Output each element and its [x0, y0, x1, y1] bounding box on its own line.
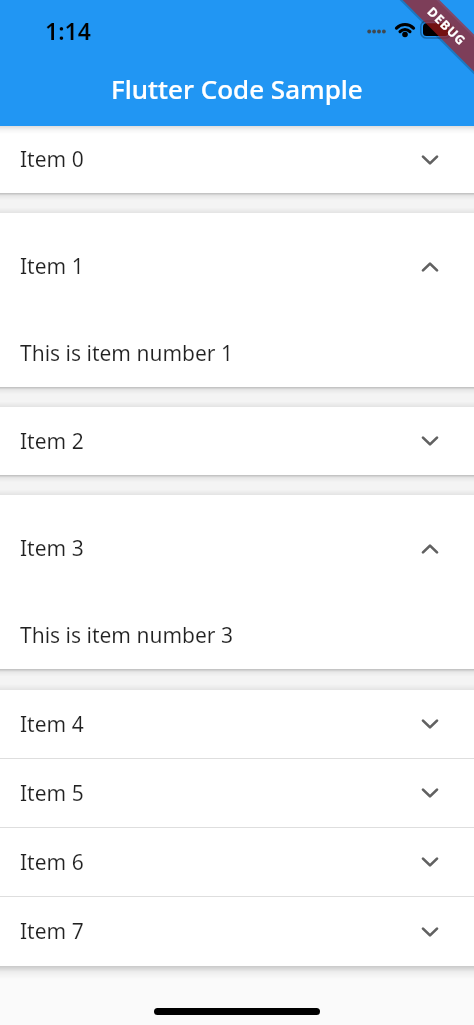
staticText: Flutter Code Sample	[111, 71, 363, 106]
staticText: Item 4	[20, 710, 84, 739]
staticText: Item 3	[20, 534, 84, 563]
button[interactable]: Item 2	[0, 407, 474, 475]
staticText: 1:14	[45, 15, 91, 46]
button[interactable]: This is item number 1	[0, 320, 474, 387]
staticText: Item 6	[20, 848, 84, 877]
staticText: Item 5	[20, 779, 84, 808]
button[interactable]: Item 4	[0, 690, 474, 758]
staticText: Item 7	[20, 917, 84, 946]
staticText: This is item number 3	[20, 621, 233, 650]
button[interactable]: Item 5	[0, 759, 474, 827]
button[interactable]: Item 0	[0, 126, 474, 193]
button[interactable]: Item 6	[0, 828, 474, 896]
button[interactable]: Item 7	[0, 897, 474, 966]
staticText: This is item number 1	[20, 339, 233, 368]
staticText: DEBUG	[424, 3, 470, 49]
staticText: Item 1	[20, 252, 84, 281]
button[interactable]: Item 3	[0, 495, 474, 602]
staticText: Item 2	[20, 427, 84, 456]
staticText: Item 0	[20, 145, 84, 174]
button[interactable]: This is item number 3	[0, 602, 474, 669]
button[interactable]: Item 1	[0, 213, 474, 320]
